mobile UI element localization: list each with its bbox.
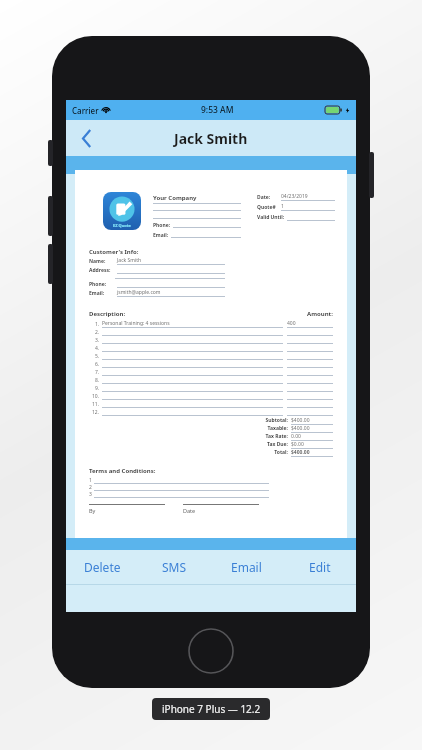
- staticText: 2.: [95, 329, 100, 336]
- button[interactable]: SMS: [138, 550, 210, 584]
- staticText: Your Company: [153, 194, 197, 202]
- staticText: 10.: [92, 393, 100, 400]
- staticText: Date: [183, 507, 196, 514]
- staticText: Edit: [309, 559, 331, 575]
- staticText: Jack Smith: [174, 129, 248, 148]
- staticText: Carrier: [72, 105, 99, 116]
- staticText: 12.: [92, 409, 100, 416]
- staticText: Address:: [89, 267, 111, 274]
- staticText: 5.: [95, 353, 100, 360]
- staticText: $0.00: [291, 441, 304, 448]
- staticText: Tax Rate:: [265, 433, 288, 440]
- staticText: By: [89, 507, 96, 514]
- button[interactable]: Delete: [66, 550, 138, 584]
- staticText: Delete: [84, 559, 121, 575]
- staticText: Quote#: [257, 204, 276, 211]
- staticText: 1.: [95, 321, 100, 328]
- staticText: Personal Training: 4 sessions: [102, 320, 170, 327]
- staticText: 9.: [95, 385, 100, 392]
- staticText: Jack Smith: [117, 257, 142, 264]
- staticText: 1: [89, 477, 92, 484]
- staticText: Customer's Info:: [89, 248, 139, 256]
- staticText: Email:: [153, 232, 169, 239]
- staticText: EZ Quote: [113, 223, 131, 228]
- staticText: Subtotal:: [265, 417, 288, 424]
- staticText: Phone:: [153, 222, 171, 229]
- staticText: Tax Due:: [267, 441, 288, 448]
- staticText: 3: [89, 491, 92, 498]
- staticText: SMS: [162, 559, 187, 575]
- staticText: Email: [231, 559, 262, 575]
- staticText: 400: [287, 320, 296, 327]
- staticText: iPhone 7 Plus — 12.2: [162, 702, 261, 716]
- button[interactable]: Back: [72, 123, 102, 153]
- staticText: Valid Until:: [257, 214, 285, 221]
- staticText: $400.00: [291, 449, 310, 456]
- staticText: Name:: [89, 258, 106, 265]
- staticText: $400.00: [291, 425, 310, 432]
- staticText: 1: [281, 203, 284, 210]
- staticText: 4.: [95, 345, 100, 352]
- button[interactable]: Email: [210, 550, 283, 584]
- staticText: Date:: [257, 194, 271, 201]
- button[interactable]: Edit: [283, 550, 356, 584]
- staticText: Terms and Conditions:: [89, 467, 156, 475]
- staticText: 8.: [95, 377, 100, 384]
- staticText: 6.: [95, 361, 100, 368]
- staticText: Total:: [274, 449, 288, 456]
- staticText: jsmith@apple.com: [117, 289, 161, 296]
- staticText: 0.00: [291, 433, 301, 440]
- staticText: 2: [89, 484, 92, 491]
- staticText: Email:: [89, 290, 105, 297]
- staticText: 11.: [92, 401, 100, 408]
- staticText: Description:: [89, 310, 126, 318]
- staticText: $400.00: [291, 417, 310, 424]
- staticText: 9:53 AM: [201, 104, 234, 116]
- staticText: Phone:: [89, 281, 107, 288]
- staticText: Amount:: [307, 310, 333, 318]
- staticText: 3.: [95, 337, 100, 344]
- staticText: 04/23/2019: [281, 193, 308, 200]
- staticText: Taxable:: [267, 425, 288, 432]
- staticText: 7.: [95, 369, 100, 376]
